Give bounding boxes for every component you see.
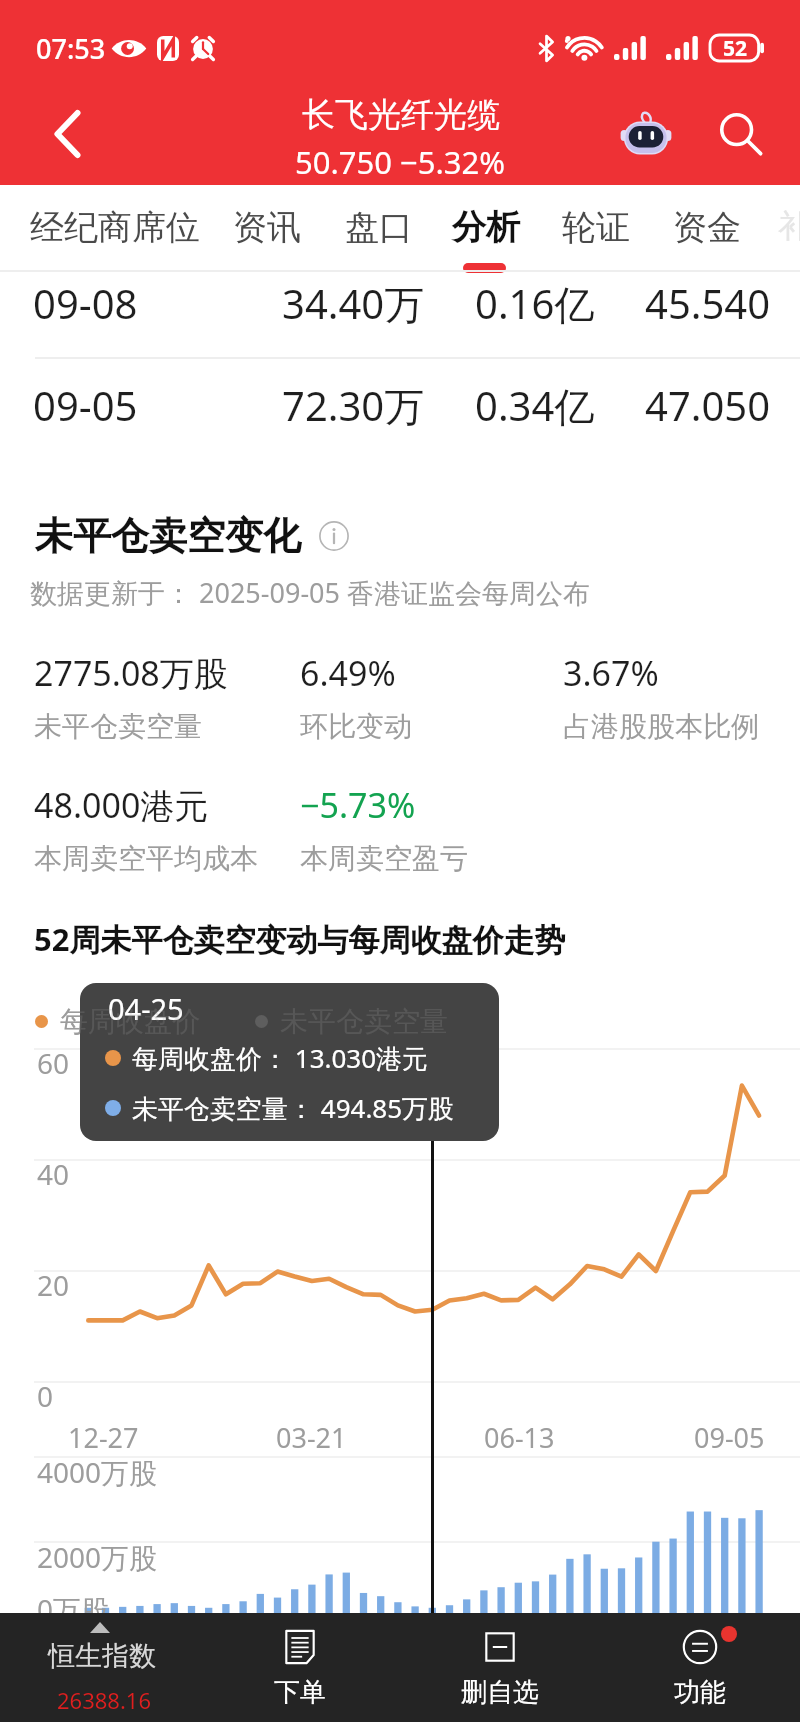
staticText: 09-08 xyxy=(33,276,138,330)
staticText: 长飞光纤光缆 xyxy=(302,94,500,136)
staticText: 60 xyxy=(37,1044,70,1082)
staticText: 52周未平仓卖空变动与每周收盘价走势 xyxy=(34,918,566,960)
button[interactable]: 盘口 xyxy=(341,185,415,272)
staticText: 12-27 xyxy=(68,1419,139,1456)
staticText: 每周收盘价： 13.030港元 xyxy=(132,1040,429,1076)
staticText: 0.34亿 xyxy=(475,378,595,433)
staticText: −5.73% xyxy=(300,782,416,828)
staticText: 0 xyxy=(37,1377,54,1415)
staticText: 07:53 xyxy=(36,30,106,67)
staticText: 本周卖空平均成本 xyxy=(34,841,258,876)
staticText: 0.16亿 xyxy=(475,276,595,331)
button[interactable]: 经纪商席位 xyxy=(30,185,205,272)
staticText: 资金 xyxy=(673,206,741,249)
staticText: 40 xyxy=(37,1155,70,1193)
staticText: 删自选 xyxy=(461,1676,539,1709)
staticText: 34.40万 xyxy=(282,276,425,331)
button[interactable]: 09-05 xyxy=(0,362,800,448)
staticText: 补 xyxy=(778,206,800,246)
staticText: 4000万股 xyxy=(37,1453,158,1491)
staticText: 未平仓卖空变化 xyxy=(35,512,301,560)
staticText: 2775.08万股 xyxy=(34,650,228,696)
staticText: 20 xyxy=(37,1266,70,1304)
button[interactable]: 恒生指数 xyxy=(0,1613,200,1722)
staticText: 经纪商席位 xyxy=(30,206,200,249)
staticText: 3.67% xyxy=(563,650,659,696)
staticText: 6.49% xyxy=(300,650,396,696)
button[interactable]: Search xyxy=(708,102,772,166)
staticText: 03-21 xyxy=(276,1419,347,1456)
staticText: 09-05 xyxy=(694,1419,765,1456)
staticText: 轮证 xyxy=(562,206,630,249)
staticText: 06-13 xyxy=(484,1419,555,1456)
button[interactable]: Back xyxy=(7,82,127,185)
staticText: 47.050 xyxy=(645,378,771,432)
button[interactable]: 09-08 xyxy=(0,260,800,346)
staticText: 48.000港元 xyxy=(34,782,209,828)
staticText: 未平仓卖空量 xyxy=(280,1004,448,1039)
staticText: 本周卖空盈亏 xyxy=(300,841,468,876)
button[interactable]: 资讯 xyxy=(229,185,303,272)
staticText: 功能 xyxy=(674,1676,726,1709)
staticText: 数据更新于： 2025-09-05 香港证监会每周公布 xyxy=(30,574,590,611)
staticText: 盘口 xyxy=(345,206,413,249)
button[interactable]: 下单 xyxy=(200,1613,400,1722)
staticText: 04-25 xyxy=(108,989,184,1028)
staticText: 26388.16 xyxy=(57,1685,151,1715)
button[interactable]: 功能 xyxy=(600,1613,800,1722)
staticText: 资讯 xyxy=(233,206,301,249)
staticText: 72.30万 xyxy=(282,378,425,433)
button[interactable]: 资金 xyxy=(669,185,743,272)
button[interactable]: 删自选 xyxy=(400,1613,600,1722)
staticText: 分析 xyxy=(452,206,520,249)
button[interactable]: 分析 xyxy=(448,185,522,272)
button[interactable]: AI assistant xyxy=(614,102,678,166)
staticText: 未平仓卖空量： 494.85万股 xyxy=(132,1090,455,1126)
button[interactable]: Info xyxy=(317,519,351,553)
staticText: 每周收盘价 xyxy=(60,1004,200,1039)
staticText: 恒生指数 xyxy=(48,1639,156,1673)
staticText: 未平仓卖空量 xyxy=(34,709,202,744)
staticText: 未平仓卖空量 xyxy=(280,1004,448,1039)
staticText: 45.540 xyxy=(645,276,771,330)
staticText: 52 xyxy=(723,34,748,60)
button[interactable]: 轮证 xyxy=(558,185,632,272)
staticText: 2000万股 xyxy=(37,1538,158,1576)
staticText: 09-05 xyxy=(33,378,138,432)
staticText: 每周收盘价 xyxy=(60,1004,200,1039)
staticText: 占港股股本比例 xyxy=(563,709,759,744)
staticText: 0万股 xyxy=(37,1590,110,1628)
staticText: 下单 xyxy=(274,1676,326,1709)
staticText: 环比变动 xyxy=(300,709,412,744)
staticText: 50.750 −5.32% xyxy=(295,141,506,183)
